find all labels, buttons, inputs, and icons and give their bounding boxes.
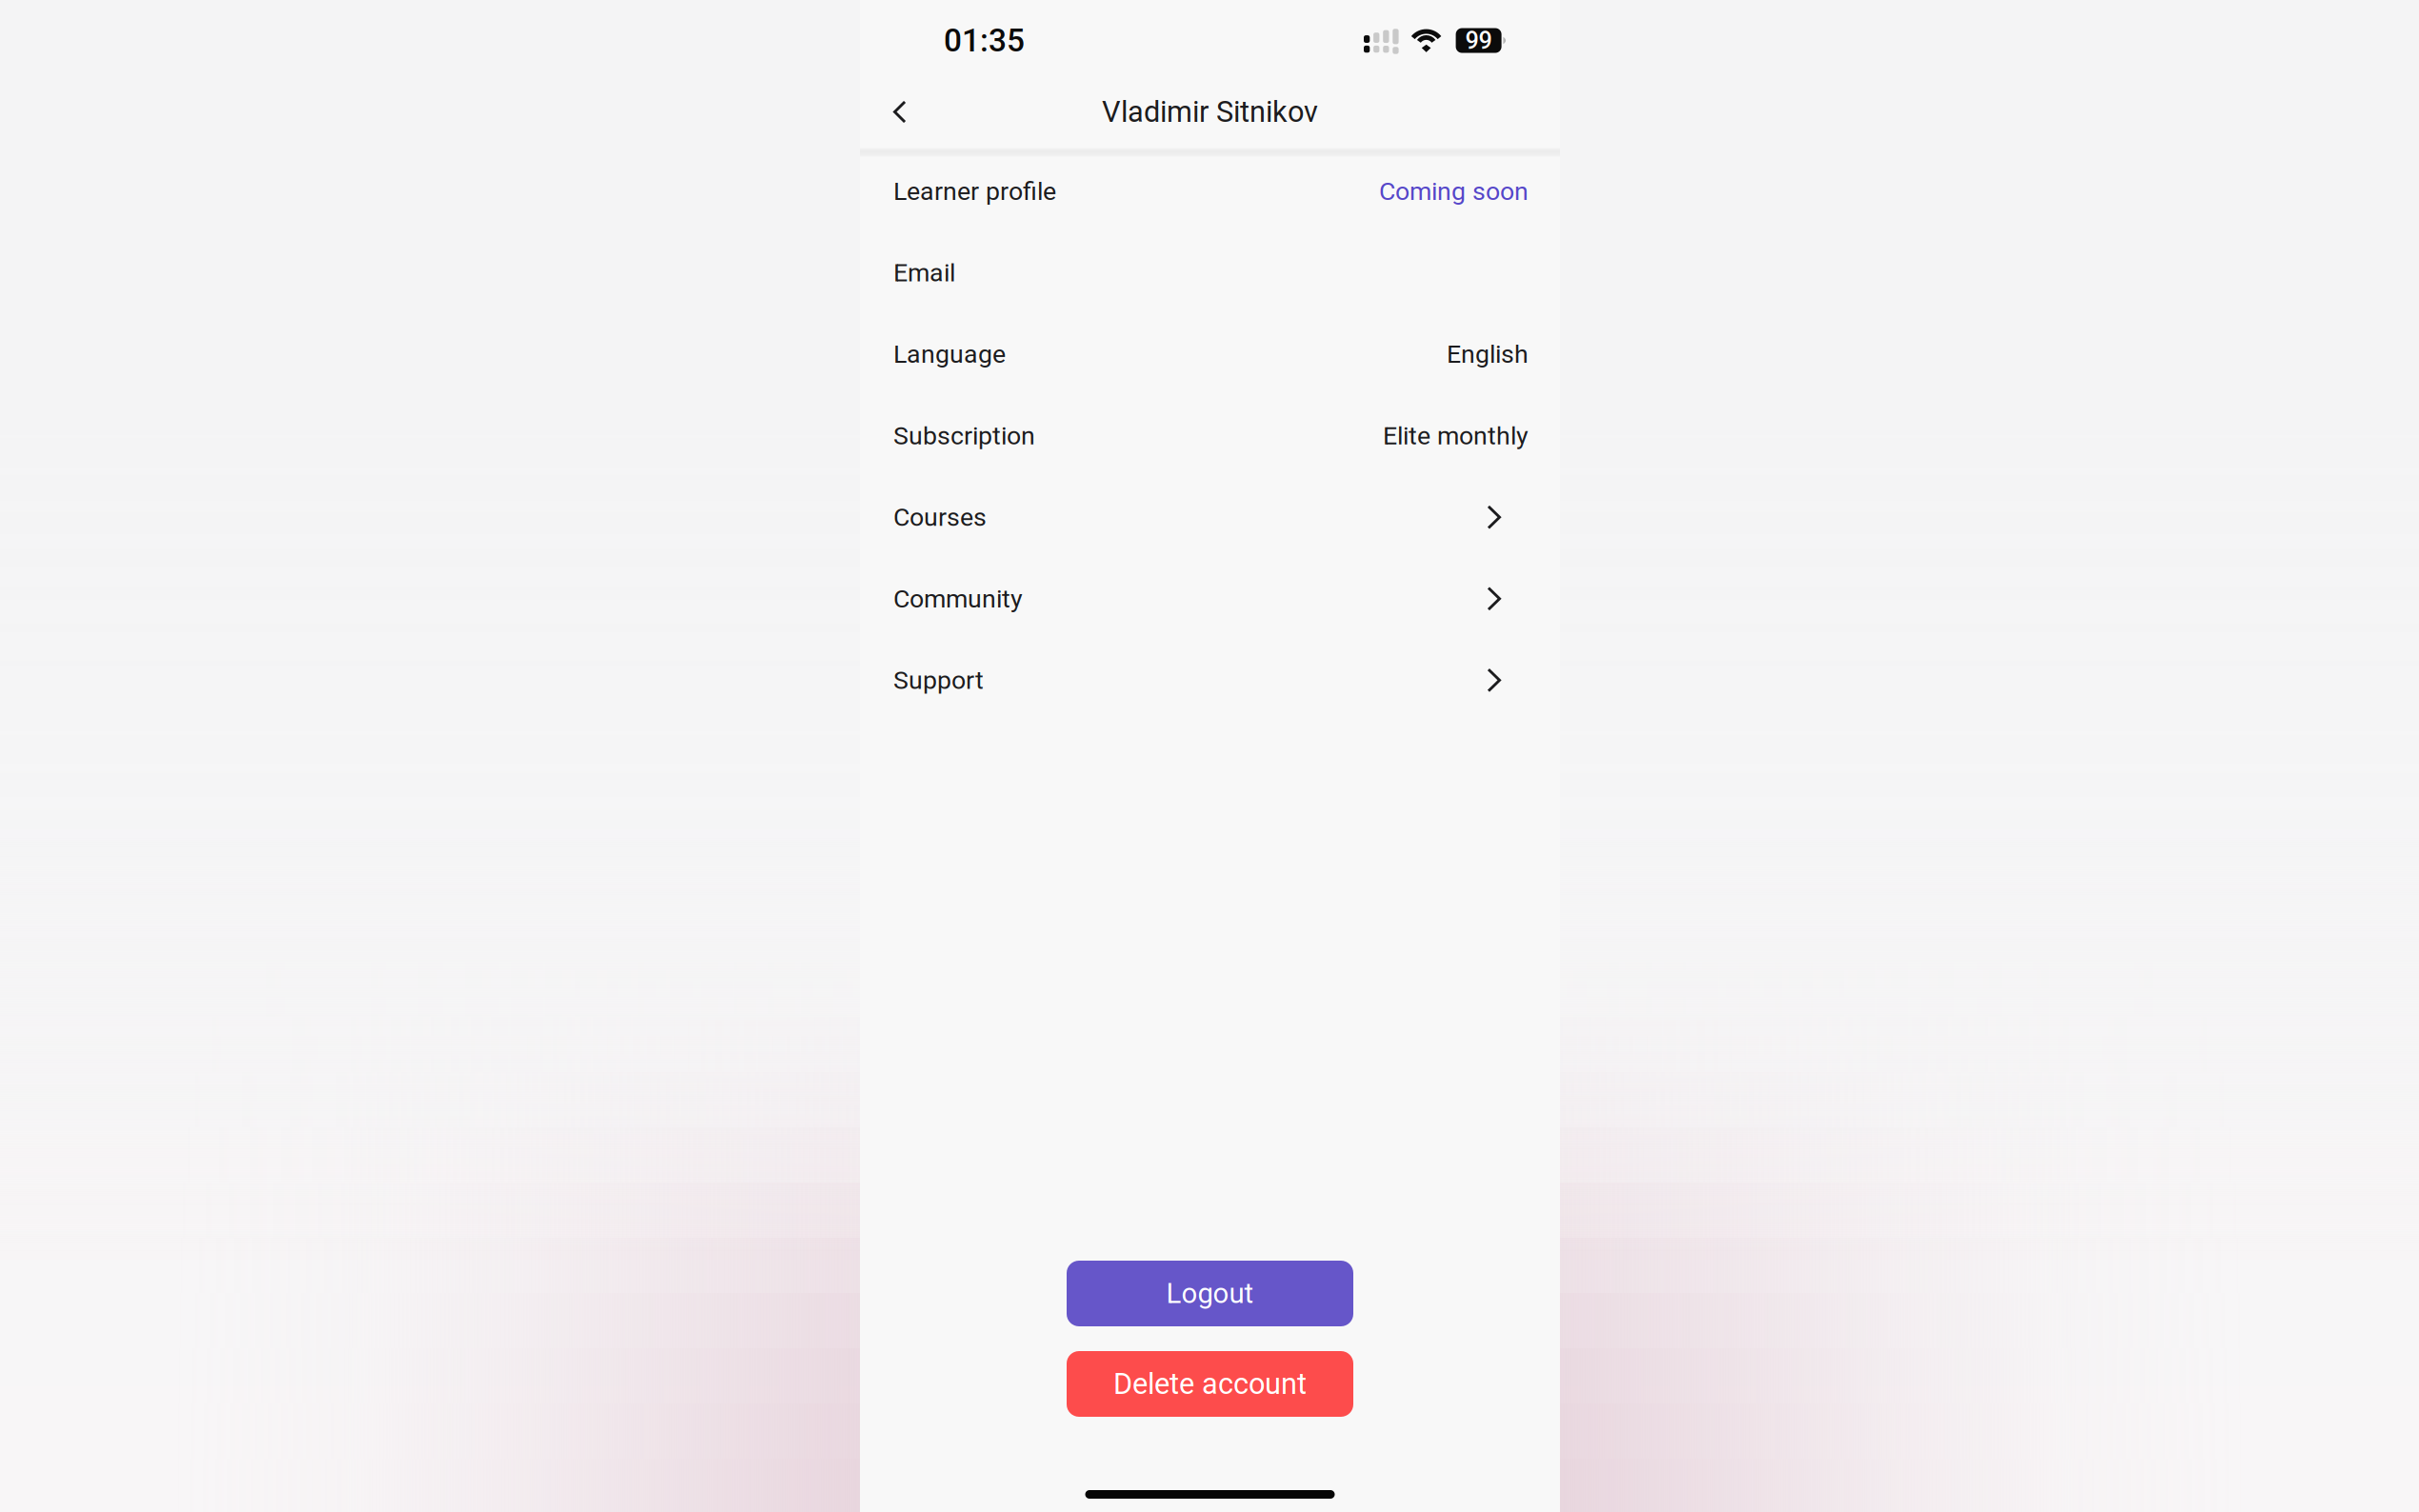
staticText: Courses <box>893 502 987 532</box>
button[interactable]: Back <box>893 86 931 138</box>
staticText: Vladimir Sitnikov <box>1102 95 1318 129</box>
button[interactable]: Courses <box>860 476 1560 558</box>
staticText: Community <box>893 584 1023 614</box>
button[interactable]: Email <box>860 232 1560 313</box>
staticText: English <box>1447 339 1529 369</box>
button[interactable]: Community <box>860 558 1560 639</box>
staticText: Delete account <box>1113 1367 1307 1401</box>
staticText: Subscription <box>893 421 1035 451</box>
staticText: 99 <box>1465 26 1492 55</box>
button[interactable]: Subscription <box>860 395 1560 476</box>
button[interactable]: Support <box>860 639 1560 721</box>
staticText: Language <box>893 339 1006 369</box>
staticText: Logout <box>1166 1277 1254 1310</box>
button[interactable]: Delete account <box>1067 1351 1353 1417</box>
staticText: Support <box>893 665 984 695</box>
staticText: Coming soon <box>1379 176 1529 206</box>
button[interactable]: Language <box>860 313 1560 395</box>
staticText: Email <box>893 258 955 288</box>
staticText: Elite monthly <box>1383 421 1529 451</box>
button[interactable]: Logout <box>1067 1261 1353 1326</box>
staticText: 01:35 <box>944 22 1025 59</box>
button[interactable]: Learner profile <box>860 150 1560 232</box>
staticText: Learner profile <box>893 176 1056 206</box>
